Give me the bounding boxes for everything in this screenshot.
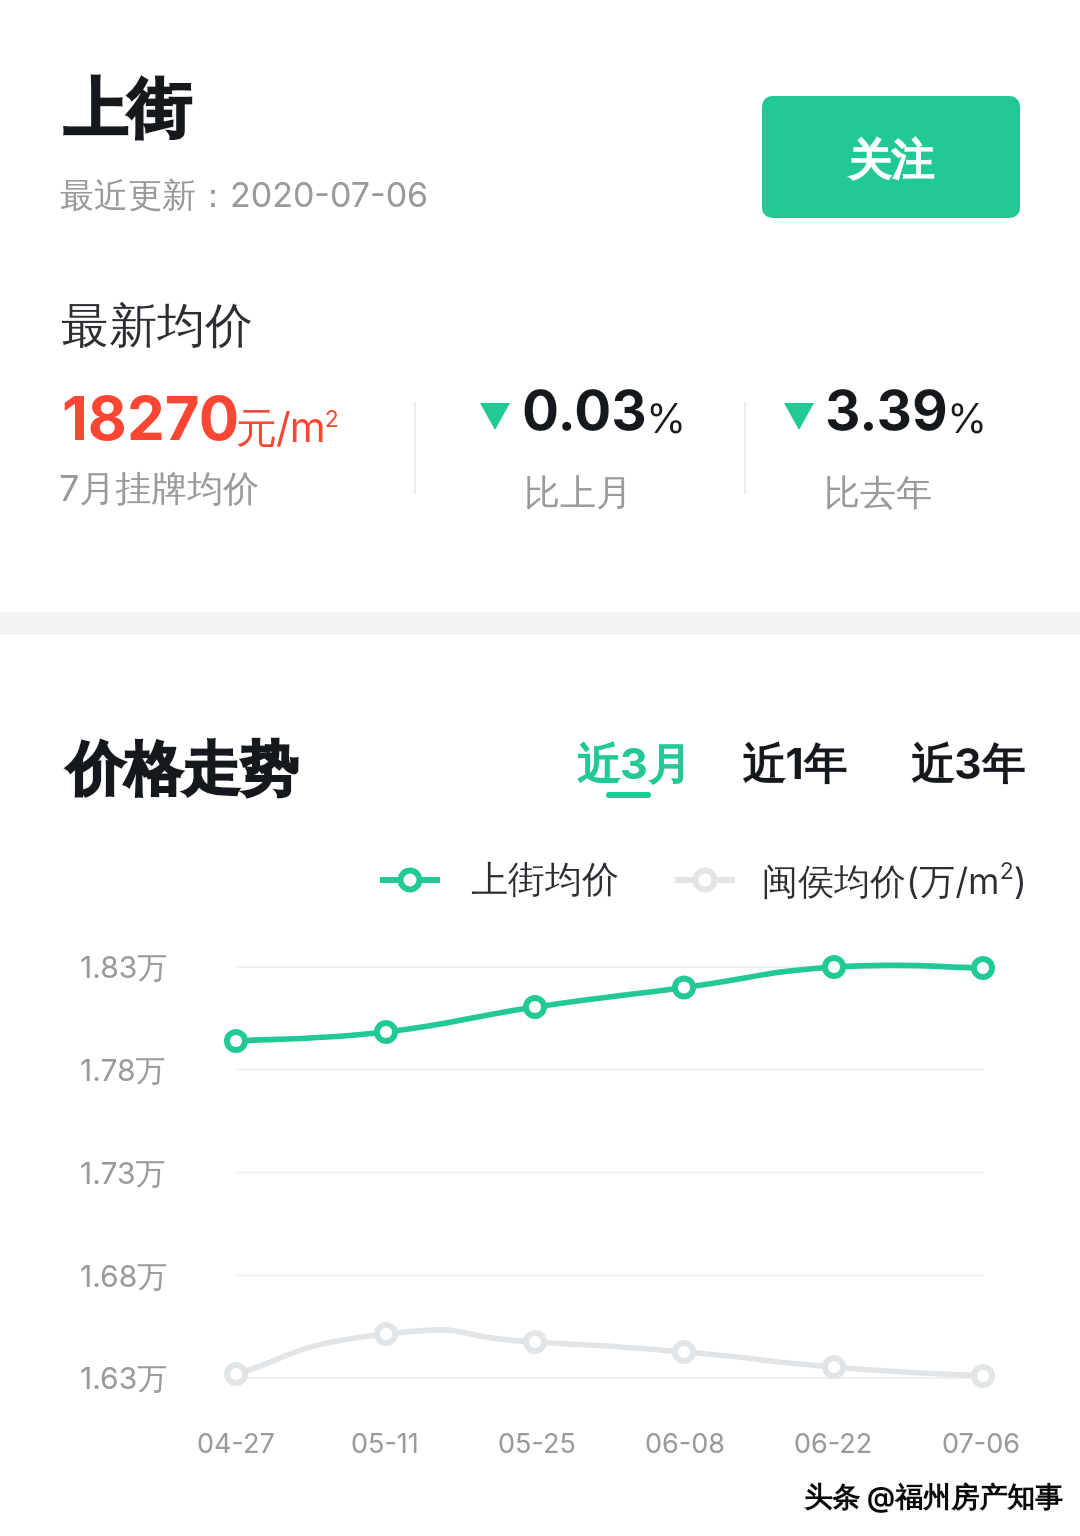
staticText: 头条 @福州房产知事 <box>803 1479 1063 1514</box>
staticText: 最新均价 <box>61 296 253 356</box>
button[interactable]: 关注 <box>762 96 1020 218</box>
staticText: % <box>947 393 988 443</box>
staticText: 头条 @福州房产知事 <box>805 1479 1065 1514</box>
staticText: 元/m2 <box>236 402 338 454</box>
staticText: 近3年 <box>911 737 1025 791</box>
staticText: % <box>646 393 687 443</box>
staticText: 1.63万 <box>80 1360 168 1398</box>
staticText: 06-22 <box>794 1427 873 1460</box>
staticText: 关注 <box>848 134 934 188</box>
staticText: 比去年 <box>824 470 932 515</box>
staticText: 价格走势 <box>66 733 298 806</box>
staticText: 05-25 <box>498 1427 576 1460</box>
staticText: 0.03 <box>522 377 647 444</box>
other: 下降 <box>784 403 814 430</box>
staticText: 近1年 <box>742 737 847 791</box>
staticText: 07-06 <box>942 1427 1020 1460</box>
staticText: 1.73万 <box>80 1155 166 1193</box>
staticText: 比上月 <box>524 470 632 515</box>
button[interactable]: 上街均价图例 <box>380 864 440 896</box>
staticText: 05-11 <box>351 1427 419 1460</box>
staticText: 头条 @福州房产知事 <box>803 1480 1063 1515</box>
staticText: 上街均价 <box>471 856 619 903</box>
staticText: 1.68万 <box>80 1258 168 1296</box>
staticText: 06-08 <box>645 1427 725 1460</box>
staticText: 头条 @福州房产知事 <box>804 1479 1064 1514</box>
staticText: 18270 <box>62 382 240 455</box>
staticText: 头条 @福州房产知事 <box>805 1481 1065 1516</box>
staticText: 头条 @福州房产知事 <box>804 1481 1064 1516</box>
staticText: 1.78万 <box>80 1052 166 1090</box>
staticText: 闽侯均价(万/m2) <box>762 857 1027 904</box>
staticText: 最近更新：2020-07-06 <box>60 174 429 217</box>
button[interactable]: 近1年 <box>742 737 847 791</box>
staticText: 1.83万 <box>80 949 168 987</box>
staticText: 04-27 <box>197 1427 275 1460</box>
other: 下降 <box>480 403 510 430</box>
staticText: 7月挂牌均价 <box>59 466 260 512</box>
button[interactable]: 3.39 <box>825 377 989 444</box>
button[interactable]: 近3年 <box>911 737 1025 791</box>
staticText: 头条 @福州房产知事 <box>803 1481 1063 1516</box>
staticText: 3.39 <box>825 377 948 444</box>
staticText: 头条 @福州房产知事 <box>804 1480 1064 1515</box>
button[interactable]: 0.03 <box>522 377 688 444</box>
button[interactable]: 近3月 <box>577 737 691 791</box>
staticText: 近3月 <box>577 737 691 791</box>
staticText: 上街 <box>63 69 191 150</box>
button[interactable]: 闽侯均价图例 <box>675 864 735 896</box>
staticText: 头条 @福州房产知事 <box>805 1480 1065 1515</box>
